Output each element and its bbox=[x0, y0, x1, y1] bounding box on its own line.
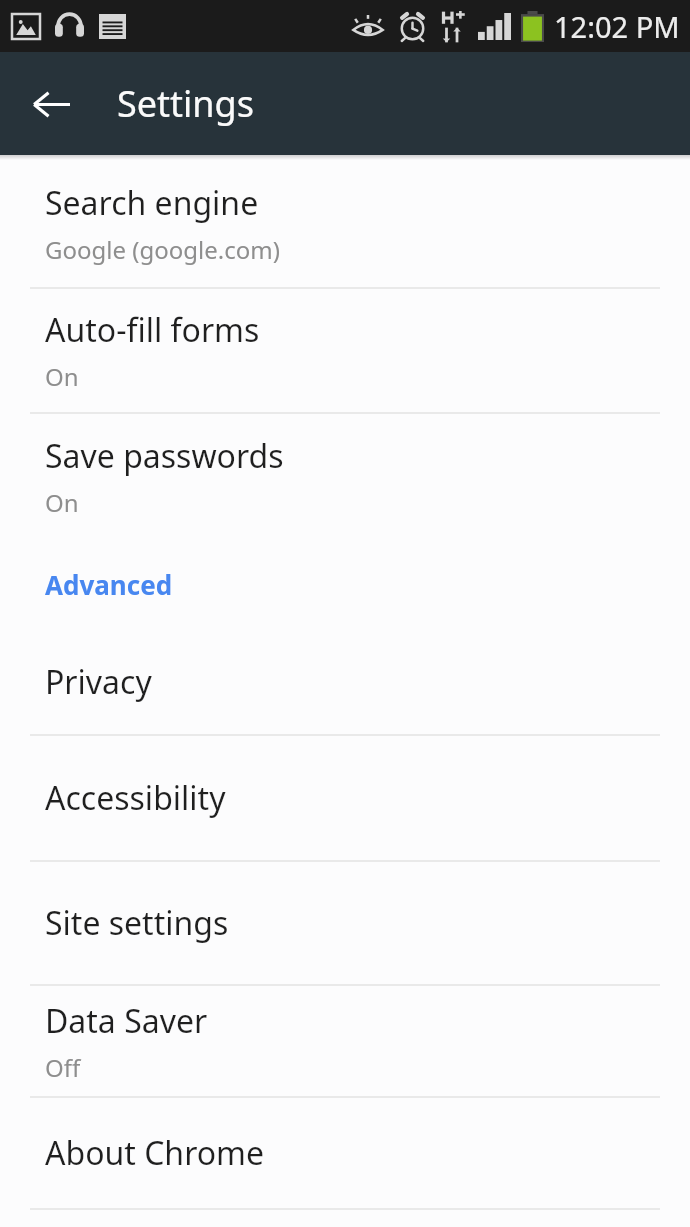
staticText: Google (google.com) bbox=[45, 233, 280, 266]
staticText: Privacy bbox=[45, 660, 152, 704]
staticText: About Chrome bbox=[45, 1131, 265, 1175]
staticText: Data Saver bbox=[45, 999, 208, 1043]
staticText: Save passwords bbox=[45, 434, 284, 478]
staticText: On bbox=[45, 360, 79, 393]
staticText: Advanced bbox=[45, 567, 173, 602]
button[interactable]: Data Saver bbox=[0, 986, 690, 1096]
button[interactable]: Accessibility bbox=[0, 736, 690, 860]
staticText: Settings bbox=[117, 79, 254, 128]
button[interactable]: Navigate up bbox=[18, 71, 84, 137]
button[interactable]: About Chrome bbox=[0, 1098, 690, 1208]
staticText: Auto-fill forms bbox=[45, 308, 260, 352]
button[interactable]: Save passwords bbox=[0, 414, 690, 538]
button[interactable]: Search engine bbox=[0, 160, 690, 287]
button[interactable]: Site settings bbox=[0, 862, 690, 984]
staticText: Accessibility bbox=[45, 776, 226, 820]
staticText: Search engine bbox=[45, 181, 259, 225]
staticText: 12:02 PM bbox=[554, 7, 680, 46]
staticText: On bbox=[45, 486, 79, 519]
button[interactable]: Auto-fill forms bbox=[0, 289, 690, 412]
button[interactable]: Privacy bbox=[0, 630, 690, 734]
staticText: Off bbox=[45, 1051, 81, 1084]
staticText: Site settings bbox=[45, 901, 229, 945]
